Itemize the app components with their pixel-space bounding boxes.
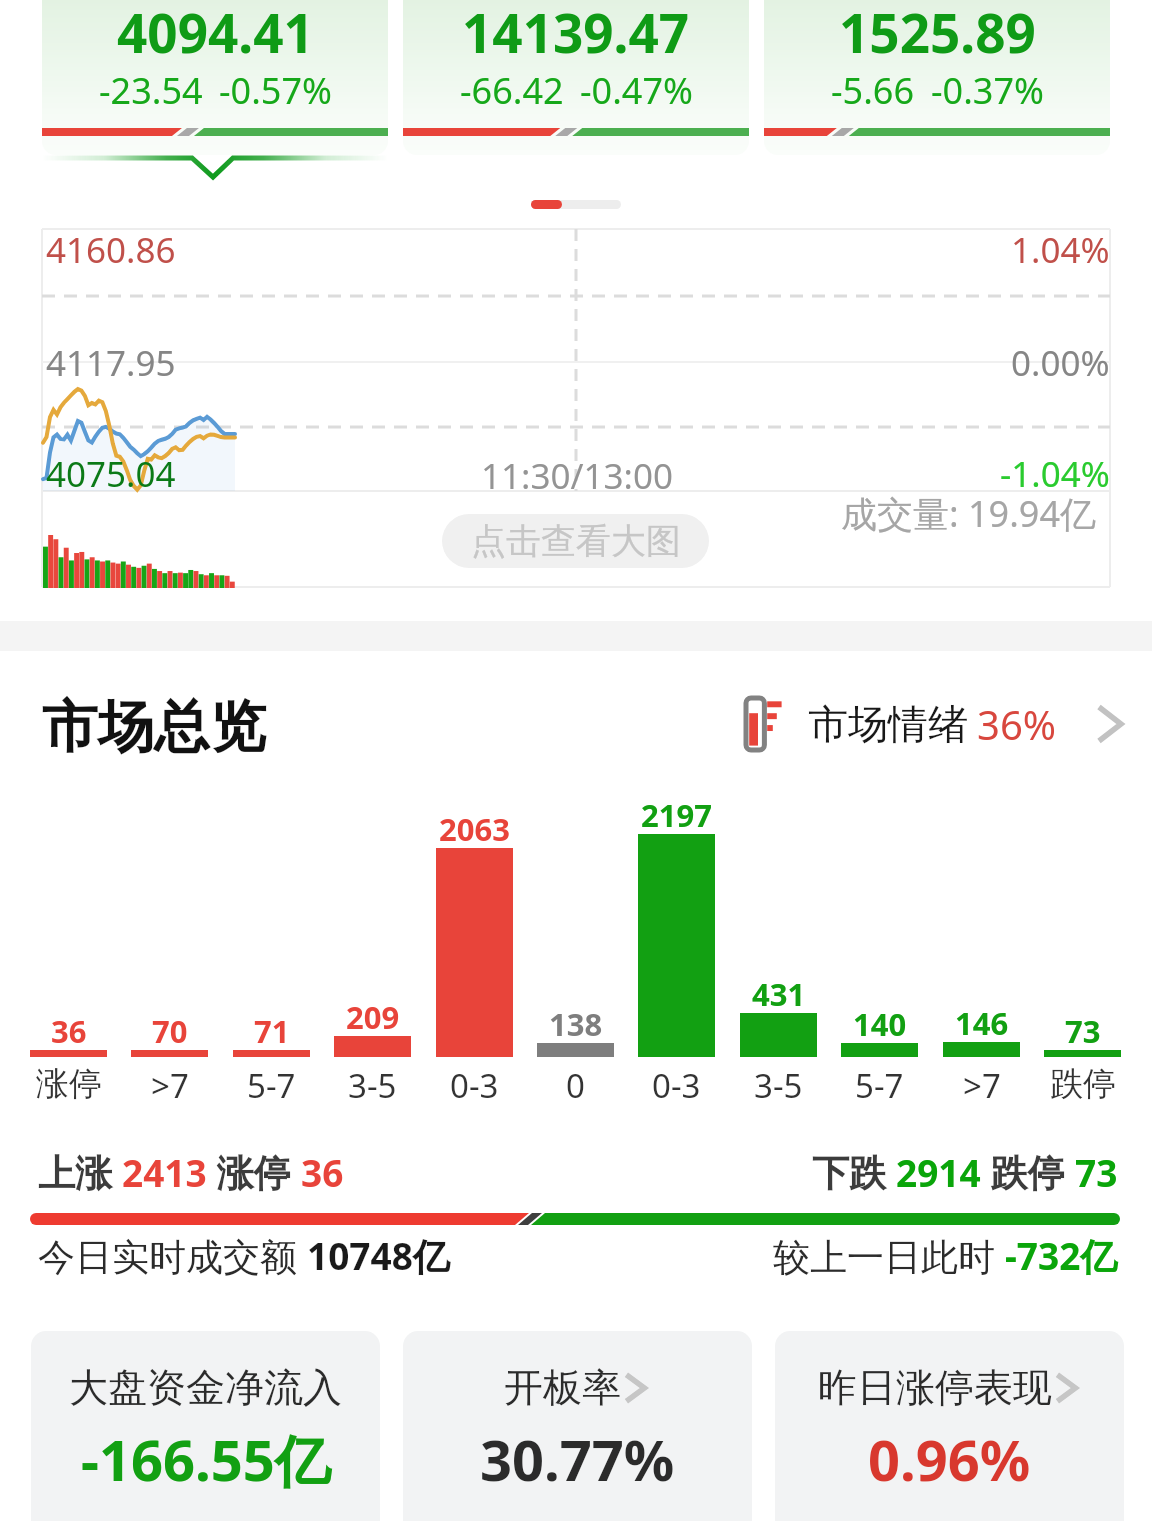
staticText: -0.57% — [219, 66, 332, 115]
staticText: 0-3 — [652, 1063, 701, 1108]
staticText: 2197 — [641, 794, 712, 836]
button[interactable]: 查看分时走势大图 — [42, 229, 1110, 587]
staticText: 4075.04 — [46, 450, 176, 498]
staticText: 3-5 — [754, 1063, 803, 1108]
staticText: 146 — [955, 1002, 1009, 1044]
staticText: 73 — [1065, 1010, 1101, 1052]
staticText: 209 — [346, 996, 400, 1038]
staticText: 成交量: 19.94亿 — [841, 489, 1097, 538]
staticText: 0 — [566, 1063, 585, 1108]
staticText: 0.00% — [1011, 339, 1110, 387]
staticText: 11:30/13:00 — [481, 452, 673, 500]
staticText: -0.47% — [580, 66, 693, 115]
staticText: 2413 — [122, 1147, 207, 1197]
staticText: 5-7 — [855, 1063, 904, 1108]
staticText: 2063 — [439, 808, 510, 850]
staticText: 2914 — [896, 1147, 981, 1197]
staticText: -5.66 — [831, 66, 915, 115]
staticText: 跌停 — [981, 1146, 1075, 1197]
staticText: 1525.89 — [839, 0, 1036, 68]
staticText: 138 — [549, 1003, 603, 1045]
staticText: -66.42 — [460, 66, 564, 115]
button[interactable]: 大盘资金净流入 — [31, 1331, 380, 1521]
staticText: 涨停 — [36, 1063, 102, 1105]
staticText: 4094.41 — [117, 0, 314, 68]
staticText: 今日实时成交额 — [38, 1230, 307, 1281]
staticText: 昨日涨停表现 — [818, 1363, 1052, 1412]
staticText: >7 — [151, 1063, 189, 1108]
staticText: 点击查看大图 — [471, 519, 681, 563]
staticText: 5-7 — [247, 1063, 296, 1108]
staticText: 1.04% — [1011, 226, 1110, 274]
staticText: 30.77% — [480, 1421, 675, 1497]
staticText: 大盘资金净流入 — [69, 1363, 342, 1412]
staticText: 下跌 — [812, 1146, 896, 1197]
staticText: 涨停 — [207, 1146, 301, 1197]
staticText: 开板率 — [504, 1363, 621, 1412]
staticText: 较上一日此时 — [773, 1230, 1005, 1281]
staticText: 4160.86 — [46, 226, 176, 274]
button[interactable]: 点击查看大图 — [442, 514, 709, 568]
staticText: 431 — [752, 973, 806, 1015]
staticText: 14139.47 — [462, 0, 690, 68]
staticText: -23.54 — [99, 66, 203, 115]
button[interactable]: 市场情绪 — [744, 696, 1122, 752]
staticText: 3-5 — [348, 1063, 397, 1108]
staticText: 0.96% — [868, 1421, 1031, 1497]
staticText: -732亿 — [1005, 1230, 1118, 1281]
staticText: 36 — [51, 1010, 87, 1052]
staticText: 0-3 — [450, 1063, 499, 1108]
staticText: 上涨 — [38, 1146, 122, 1197]
staticText: >7 — [963, 1063, 1001, 1108]
button[interactable]: 昨日涨停表现 — [775, 1331, 1124, 1521]
staticText: 140 — [853, 1003, 907, 1045]
staticText: 36% — [977, 697, 1056, 751]
staticText: -1.04% — [1000, 450, 1110, 498]
button[interactable]: 开板率 — [403, 1331, 752, 1521]
staticText: 70 — [152, 1010, 188, 1052]
staticText: 市场情绪 — [808, 699, 968, 749]
staticText: 71 — [254, 1010, 290, 1052]
staticText: 36 — [301, 1147, 344, 1197]
staticText: -166.55亿 — [81, 1421, 331, 1497]
staticText: 73 — [1075, 1147, 1118, 1197]
staticText: 跌停 — [1050, 1063, 1116, 1105]
button[interactable]: 14139.47 — [403, 0, 749, 155]
button[interactable]: 1525.89 — [764, 0, 1110, 155]
staticText: 市场总览 — [42, 692, 266, 763]
staticText: -0.37% — [931, 66, 1044, 115]
staticText: 4117.95 — [46, 339, 176, 387]
button[interactable]: 4094.41 — [42, 0, 388, 155]
staticText: 10748亿 — [307, 1230, 450, 1281]
